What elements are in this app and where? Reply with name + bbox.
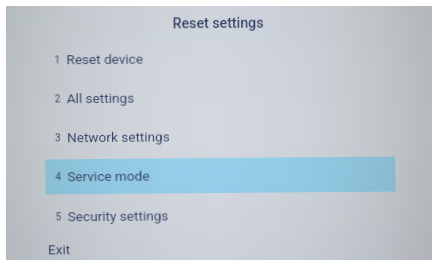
- staticText: Exit: [48, 241, 71, 257]
- button[interactable]: 5: [45, 197, 396, 234]
- staticText: 3: [55, 132, 61, 144]
- button[interactable]: Exit: [48, 236, 71, 262]
- staticText: 1: [54, 54, 60, 66]
- staticText: Service mode: [67, 168, 150, 184]
- button[interactable]: 2: [45, 79, 395, 116]
- staticText: Reset device: [66, 51, 143, 67]
- staticText: 2: [55, 93, 61, 105]
- staticText: Reset settings: [5, 13, 431, 34]
- staticText: 5: [56, 211, 62, 223]
- button[interactable]: 3: [45, 118, 395, 155]
- staticText: All settings: [67, 90, 135, 106]
- button[interactable]: 4: [45, 157, 395, 194]
- button[interactable]: 1: [44, 40, 395, 77]
- staticText: Security settings: [68, 207, 169, 224]
- staticText: Network settings: [67, 128, 170, 145]
- staticText: 4: [55, 171, 61, 183]
